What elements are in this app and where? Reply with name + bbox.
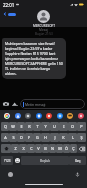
button[interactable]: I: [59, 122, 68, 131]
button[interactable]: K: [59, 133, 68, 142]
staticText: aldırın.: [5, 71, 17, 76]
button[interactable]: Contact profile: [37, 10, 50, 23]
staticText: L: [72, 135, 74, 140]
button[interactable]: D: [17, 133, 25, 142]
staticText: için promosyon kodu kazandınız: [5, 56, 58, 61]
staticText: R: [28, 124, 31, 129]
staticText: Mesaj: [39, 28, 48, 32]
staticText: Ö: [65, 146, 68, 151]
button[interactable]: X: [19, 144, 27, 153]
button[interactable]: Metin mesajı: [20, 99, 85, 109]
staticText: N: [51, 146, 54, 151]
button[interactable]: R: [25, 122, 33, 131]
button[interactable]: More: [77, 112, 84, 119]
staticText: K: [62, 135, 65, 140]
button[interactable]: Space: [21, 156, 69, 165]
staticText: Y: [44, 124, 47, 129]
button[interactable]: Ö: [63, 144, 70, 153]
staticText: M: [58, 146, 62, 151]
button[interactable]: Next: [69, 156, 86, 165]
button[interactable]: G: [33, 133, 41, 142]
button[interactable]: Back: [2, 11, 17, 17]
button[interactable]: Gallery: [10, 99, 19, 108]
button[interactable]: H: [41, 133, 50, 142]
button[interactable]: V: [35, 144, 42, 153]
button[interactable]: M: [56, 144, 63, 153]
staticText: D: [20, 135, 23, 140]
staticText: Metin mesajı: [25, 102, 46, 107]
staticText: B: [44, 146, 47, 151]
staticText: Geç: [75, 159, 81, 163]
staticText: V: [37, 146, 40, 151]
staticText: S: [12, 135, 15, 140]
staticText: C: [30, 146, 33, 151]
button[interactable]: B: [42, 144, 49, 153]
button[interactable]: P: [77, 122, 86, 131]
button[interactable]: T: [33, 122, 41, 131]
button[interactable]: Backspace: [77, 144, 86, 153]
button[interactable]: Shift: [1, 144, 11, 153]
button[interactable]: Change language: [8, 172, 13, 177]
staticText: O: [71, 124, 74, 129]
staticText: I: [63, 124, 65, 129]
button[interactable]: W: [9, 122, 17, 131]
button[interactable]: Voice input: [74, 171, 81, 178]
staticText: MERCURESOFT: [33, 24, 55, 27]
staticText: ?123: [4, 159, 11, 163]
button[interactable]: Google search: [3, 112, 10, 119]
button[interactable]: F: [25, 133, 33, 142]
button[interactable]: U: [50, 122, 59, 131]
button[interactable]: Ç: [70, 144, 77, 153]
staticText: G: [36, 135, 39, 140]
staticText: E: [20, 124, 23, 129]
button[interactable]: E: [17, 122, 25, 131]
staticText: P: [80, 124, 83, 129]
button[interactable]: Symbols: [1, 156, 13, 165]
button[interactable]: Clipboard: [35, 112, 42, 119]
staticText: Ç: [72, 146, 75, 151]
staticText: F: [28, 135, 30, 140]
button[interactable]: C: [27, 144, 35, 153]
staticText: W: [11, 124, 15, 129]
staticText: 22:01: [3, 2, 15, 8]
staticText: keçimal Bugün 23:59'a kadar: [5, 46, 53, 51]
staticText: Q: [4, 124, 7, 129]
staticText: Z: [14, 146, 17, 151]
staticText: J: [54, 135, 56, 140]
button[interactable]: Voice typing: [45, 112, 52, 119]
staticText: MERCURESOFT-SAPPHIRE gelin 150: [5, 61, 63, 66]
staticText: H: [44, 135, 47, 140]
staticText: A: [4, 135, 7, 140]
staticText: Muhteşem kazanım size fırsat!: [5, 41, 55, 46]
staticText: Sapphire flexten R15 9700 kart: [5, 51, 56, 56]
button[interactable]: Q: [1, 122, 9, 131]
button[interactable]: Emoji: [13, 156, 21, 165]
button[interactable]: O: [68, 122, 77, 131]
staticText: Bugün 21:53: [35, 32, 53, 36]
staticText: Boşluk: [40, 159, 51, 163]
staticText: Ş: [80, 135, 83, 140]
button[interactable]: N: [49, 144, 56, 153]
button[interactable]: J: [50, 133, 59, 142]
staticText: X: [22, 146, 25, 151]
button[interactable]: Themes: [56, 112, 63, 119]
staticText: U: [53, 124, 56, 129]
staticText: TL indirim ve ücretsiz kargo: [5, 66, 51, 71]
button[interactable]: Camera: [1, 99, 10, 108]
button[interactable]: Stickers: [24, 112, 31, 119]
button[interactable]: Emoji kitchen: [66, 112, 73, 119]
button[interactable]: Muhteşem kazanım size fırsat!: [2, 38, 66, 79]
button[interactable]: A: [1, 133, 9, 142]
button[interactable]: Y: [41, 122, 50, 131]
button[interactable]: Translate: [14, 112, 21, 119]
button[interactable]: Ş: [77, 133, 86, 142]
button[interactable]: Z: [11, 144, 19, 153]
staticText: T: [36, 124, 39, 129]
button[interactable]: L: [68, 133, 77, 142]
button[interactable]: S: [9, 133, 17, 142]
